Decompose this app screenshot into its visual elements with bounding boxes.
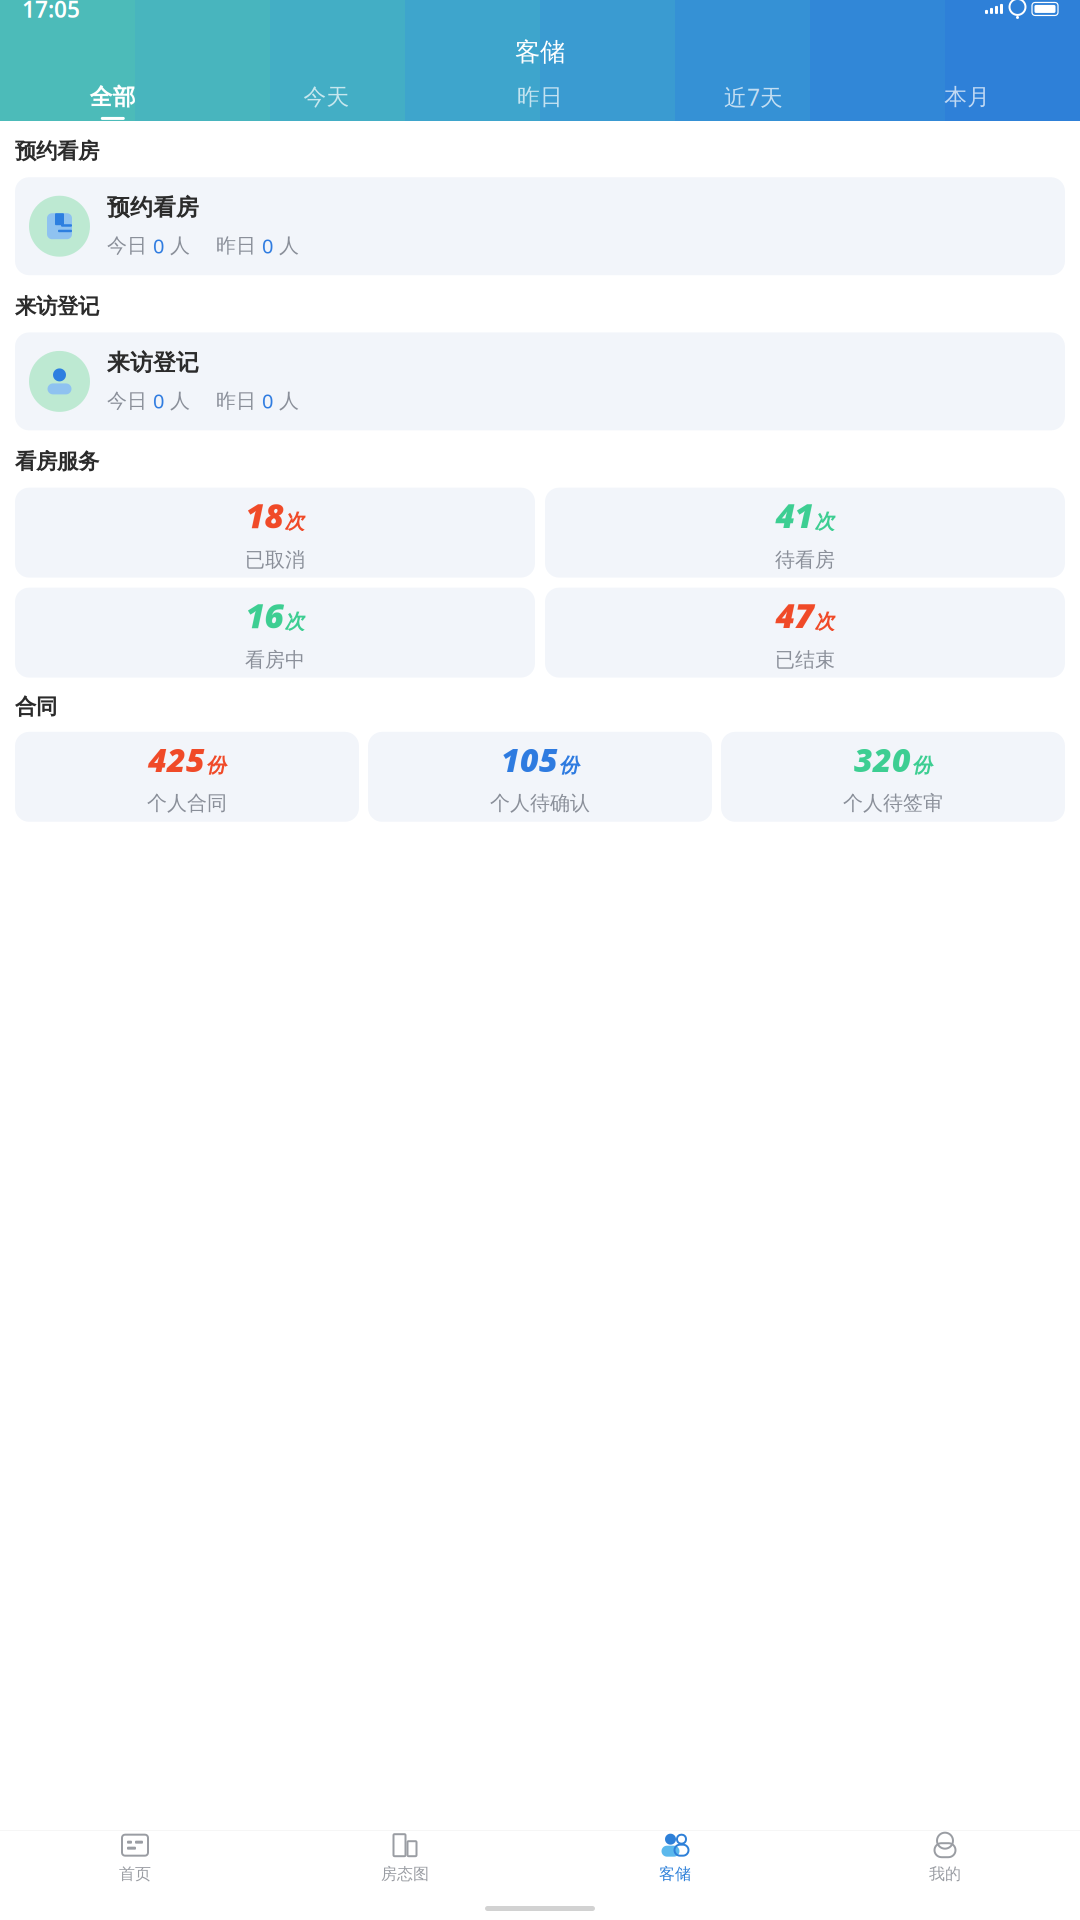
button[interactable]: 全部 [6,80,220,123]
button[interactable]: 来访登记 [15,332,1065,430]
button[interactable]: 今天 [220,80,433,123]
staticText: 份 [559,753,579,778]
staticText: 18 [245,493,283,537]
staticText: 47 [775,593,813,637]
button[interactable]: 近7天 [647,79,860,124]
staticText: 已结束 [775,647,835,672]
staticText: 本月 [944,83,990,111]
staticText: 人 [273,233,299,258]
button[interactable]: 16 [15,588,535,678]
staticText: 今日 [107,233,153,258]
staticText: 425 [148,738,205,781]
staticText: 昨日 [216,388,262,413]
staticText: 次 [284,609,304,634]
staticText: 次 [284,509,304,534]
button[interactable]: 客储 [540,1826,810,1891]
staticText: 待看房 [775,547,835,572]
button[interactable]: 预约看房 [15,177,1065,275]
button[interactable]: 320 [721,732,1065,822]
staticText: 看房服务 [15,448,99,475]
staticText: 0 [262,387,273,414]
staticText: 份 [912,753,932,778]
staticText: 今天 [303,83,349,111]
staticText: 昨日 [216,233,262,258]
staticText: 次 [814,609,834,634]
staticText: 个人待确认 [490,791,590,815]
staticText: 房态图 [381,1864,429,1884]
staticText: 昨日 [517,83,563,111]
staticText: 已取消 [245,547,305,572]
staticText: 全部 [90,83,136,111]
button[interactable]: 105 [368,732,712,822]
staticText: 份 [206,753,226,778]
staticText: 预约看房 [107,193,199,221]
button[interactable]: 首页 [0,1826,270,1891]
staticText: 0 [262,232,273,259]
staticText: 客储 [659,1864,691,1884]
staticText: 人 [273,388,299,413]
staticText: 105 [501,738,558,781]
staticText: 0 [153,387,164,414]
staticText: 合同 [15,694,57,720]
staticText: 今日 [107,388,153,413]
staticText: 预约看房 [15,138,99,164]
button[interactable]: 41 [545,488,1065,578]
staticText: 41 [775,493,813,537]
staticText: 看房中 [245,647,305,672]
staticText: 客储 [515,36,565,67]
staticText: 来访登记 [107,349,199,376]
staticText: 近7天 [724,82,783,112]
button[interactable]: 425 [15,732,359,822]
staticText: 首页 [119,1864,151,1884]
staticText: 人 [164,233,190,258]
staticText: 16 [245,593,283,637]
staticText: 0 [153,232,164,259]
button[interactable]: 18 [15,488,535,578]
button[interactable]: 房态图 [270,1826,540,1891]
button[interactable]: 昨日 [433,80,647,123]
staticText: 人 [164,388,190,413]
staticText: 个人待签审 [843,791,943,815]
button[interactable]: 47 [545,588,1065,678]
staticText: 来访登记 [15,293,99,319]
staticText: 我的 [929,1864,961,1884]
staticText: 个人合同 [147,791,227,815]
button[interactable]: 本月 [860,80,1074,123]
staticText: 17:05 [22,0,80,24]
staticText: 次 [814,509,834,534]
button[interactable]: 我的 [810,1826,1080,1891]
staticText: 320 [854,738,911,781]
